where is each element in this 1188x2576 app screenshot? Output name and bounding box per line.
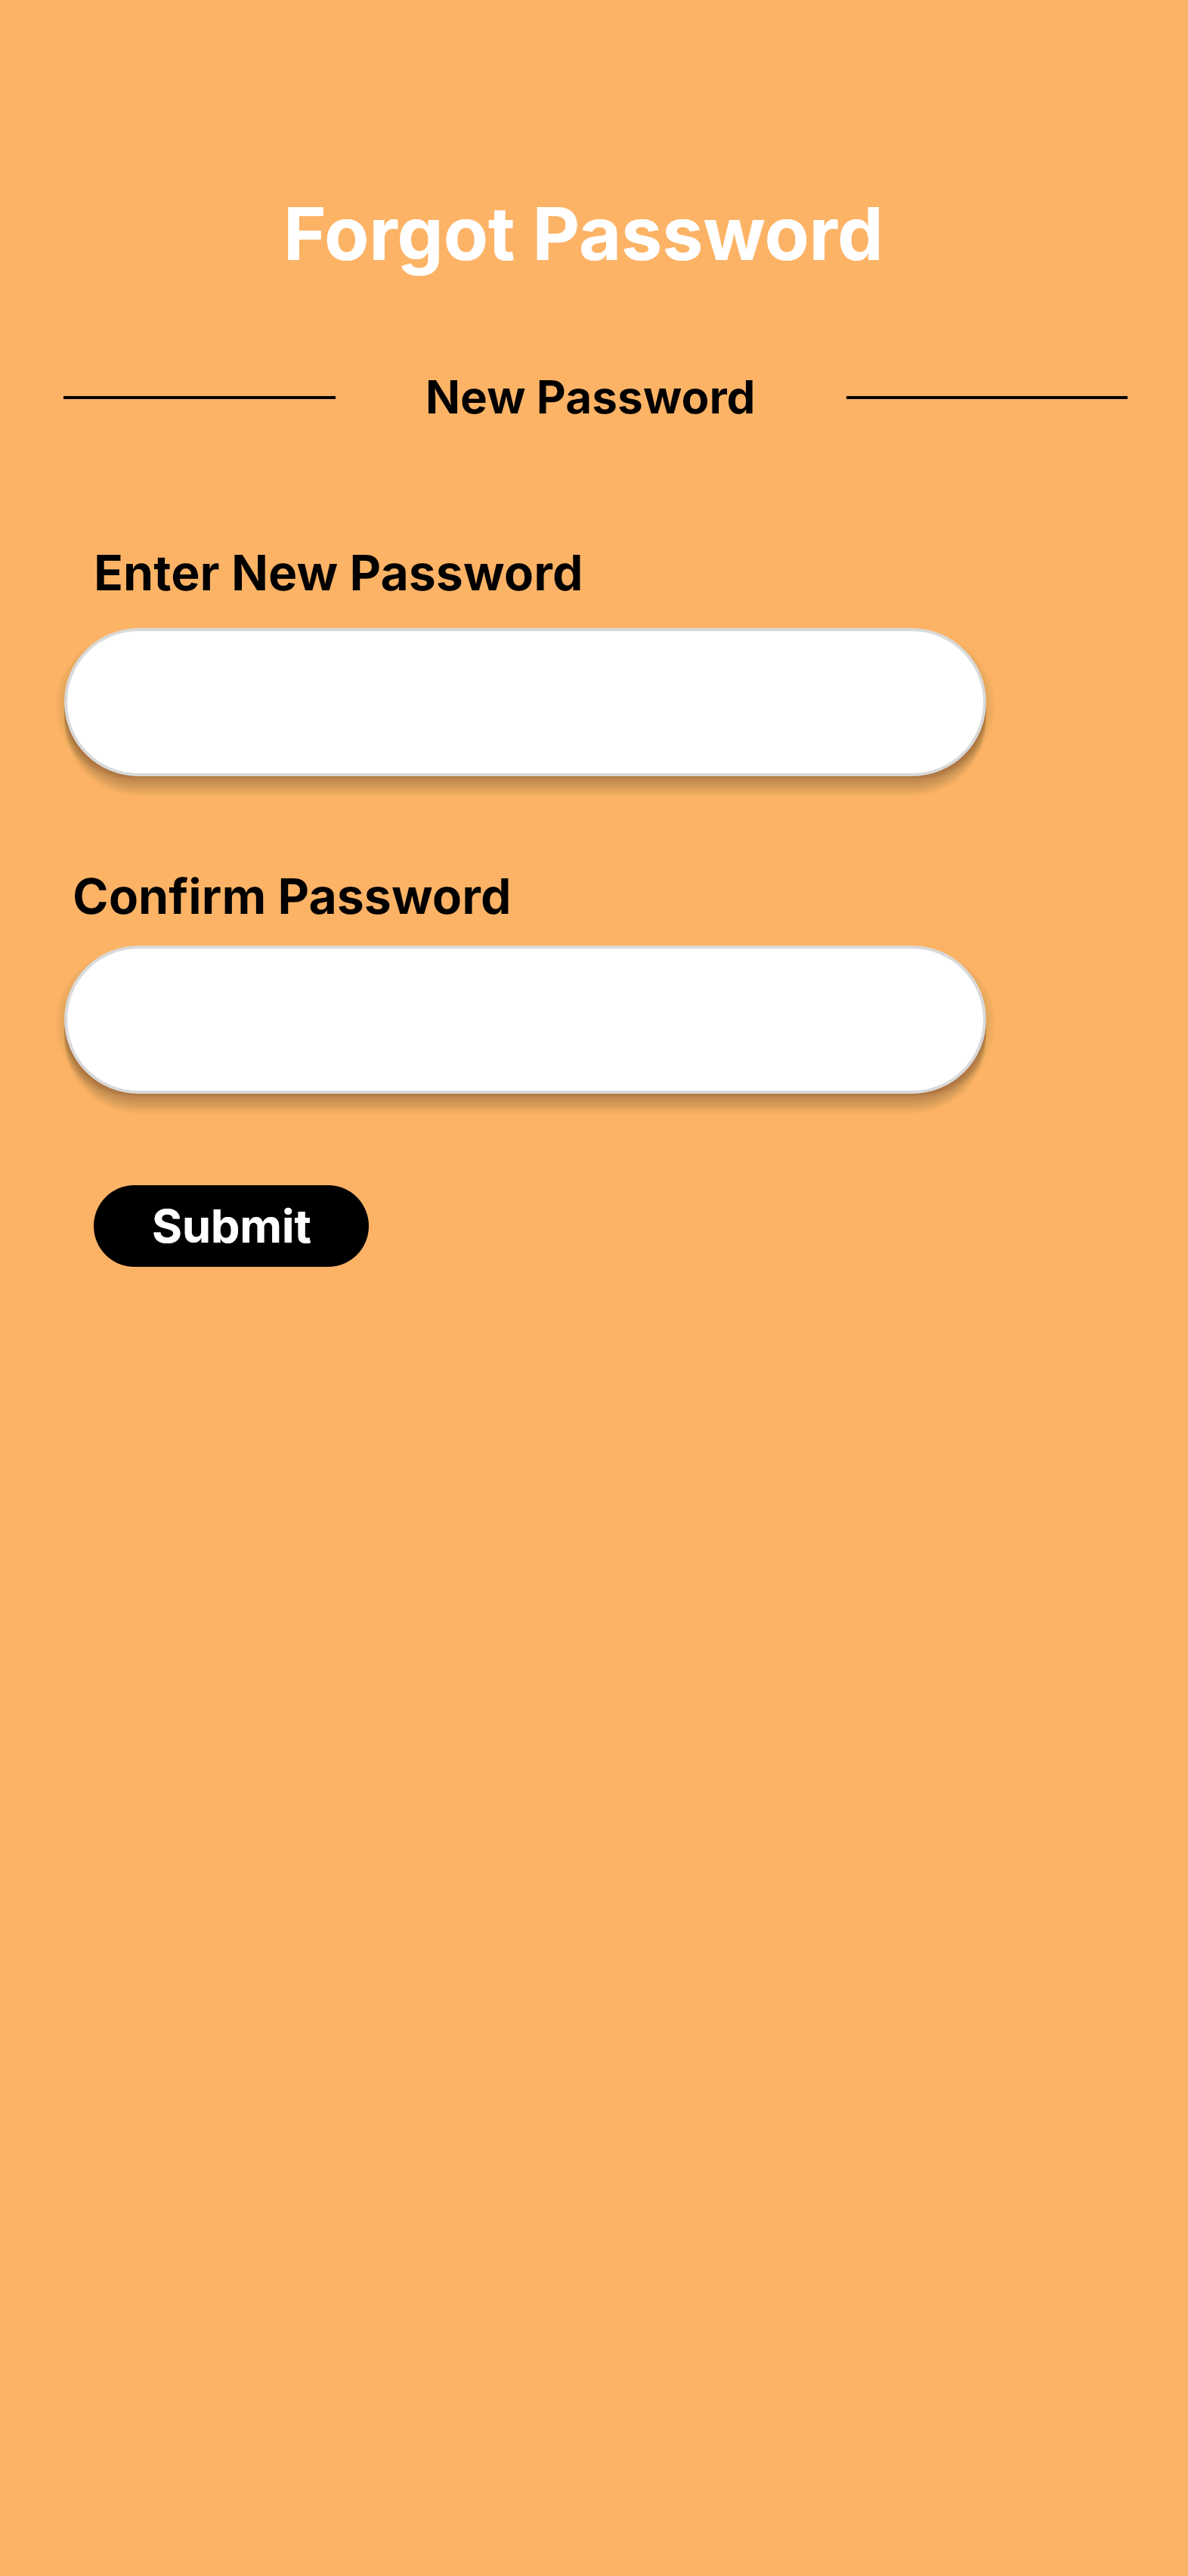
staticText: Enter New Password <box>94 543 583 602</box>
staticText: Confirm Password <box>73 867 512 926</box>
button[interactable]: Confirm Password <box>64 946 986 1094</box>
staticText: Forgot Password <box>0 189 1177 277</box>
button[interactable]: Submit <box>94 1185 369 1267</box>
staticText: Submit <box>152 1198 311 1254</box>
staticText: New Password <box>425 369 756 424</box>
button[interactable]: Enter New Password <box>64 628 986 776</box>
